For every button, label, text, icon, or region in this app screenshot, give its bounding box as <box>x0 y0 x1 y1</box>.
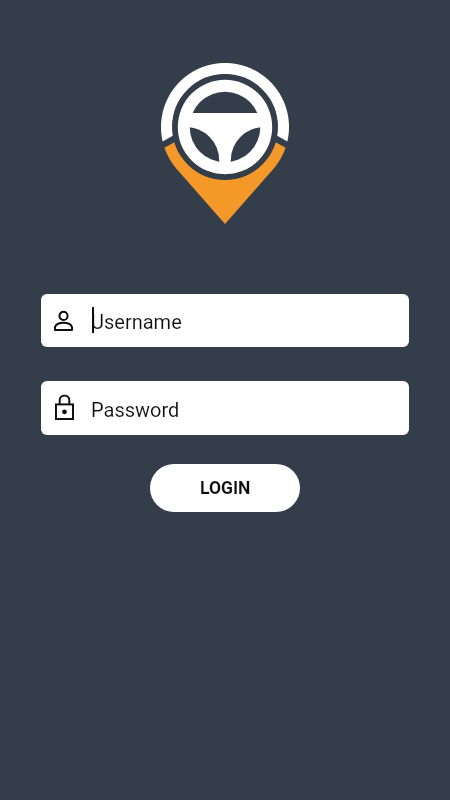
other: App logo <box>0 0 450 800</box>
staticText: Password <box>91 398 180 421</box>
staticText: LOGIN <box>200 478 251 499</box>
other: Password <box>55 395 74 420</box>
other: Username <box>54 311 73 331</box>
button[interactable]: LOGIN <box>150 464 300 512</box>
staticText: Username <box>91 310 182 333</box>
button[interactable]: Username <box>41 294 409 347</box>
button[interactable]: Password <box>41 381 409 435</box>
